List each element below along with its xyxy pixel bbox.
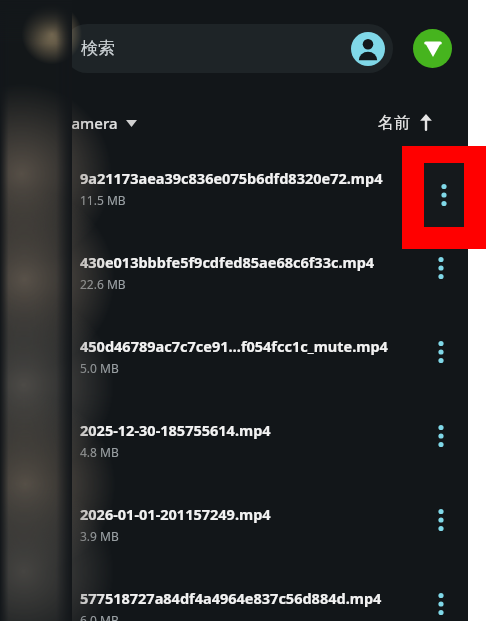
staticText: 6.0 MB (80, 612, 119, 621)
staticText: 9a21173aea39c836e075b6dfd8320e72.mp4 (80, 168, 383, 188)
button[interactable]: 名前 (378, 105, 433, 141)
staticText: 名前 (378, 113, 410, 133)
button[interactable]: 450d46789ac7c7ce91…f054fcc1c_mute.mp4 (0, 316, 468, 400)
staticText: 5.0 MB (80, 360, 119, 376)
staticText: Camera (62, 113, 118, 133)
button[interactable]: More options (423, 330, 459, 374)
button[interactable]: More options (423, 498, 459, 542)
button[interactable]: More options (423, 414, 459, 458)
button[interactable]: 検索 (63, 24, 393, 73)
staticText: 2025-12-30-185755614.mp4 (80, 420, 271, 440)
staticText: 2026-01-01-201157249.mp4 (80, 504, 271, 524)
button[interactable]: 9a21173aea39c836e075b6dfd8320e72.mp4 (0, 148, 468, 232)
button[interactable]: 430e013bbbfe5f9cdfed85ae68c6f33c.mp4 (0, 232, 468, 316)
button[interactable]: More options (423, 162, 459, 206)
staticText: 検索 (81, 38, 115, 59)
button[interactable]: Camera (62, 105, 137, 141)
button[interactable]: More options (423, 582, 459, 621)
button[interactable]: 2025-12-30-185755614.mp4 (0, 400, 468, 484)
staticText: 430e013bbbfe5f9cdfed85ae68c6f33c.mp4 (80, 252, 375, 272)
staticText: 3.9 MB (80, 528, 119, 544)
button[interactable]: More options (423, 246, 459, 290)
button[interactable]: Account (351, 32, 385, 66)
button[interactable]: 2026-01-01-201157249.mp4 (0, 484, 468, 568)
button[interactable]: Premium (413, 29, 452, 68)
staticText: 577518727a84df4a4964e837c56d884d.mp4 (80, 588, 382, 608)
staticText: 11.5 MB (80, 192, 126, 208)
button[interactable]: Grid view (14, 107, 48, 141)
staticText: 22.6 MB (80, 276, 126, 292)
staticText: 4.8 MB (80, 444, 119, 460)
button[interactable]: 577518727a84df4a4964e837c56d884d.mp4 (0, 568, 468, 621)
button[interactable]: Menu (10, 28, 54, 72)
staticText: 450d46789ac7c7ce91…f054fcc1c_mute.mp4 (80, 336, 388, 356)
